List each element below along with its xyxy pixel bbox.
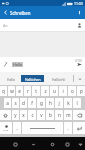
button[interactable]: Hallöchli: [44, 72, 73, 85]
staticText: 11:03: [74, 1, 83, 6]
button[interactable]: o: [68, 86, 76, 96]
button[interactable]: Add recipient: [74, 19, 85, 31]
button[interactable]: s: [12, 98, 19, 108]
button[interactable]: d: [20, 98, 27, 108]
button[interactable]: Hide keyboard: [75, 139, 85, 149]
staticText: d: [22, 100, 25, 106]
staticText: z: [44, 88, 47, 94]
staticText: a: [6, 100, 9, 106]
button[interactable]: x: [20, 110, 27, 120]
button[interactable]: l: [73, 98, 81, 108]
staticText: Hallöchen: [25, 77, 41, 81]
staticText: ,: [16, 125, 18, 131]
button[interactable]: Hallo: [0, 72, 21, 85]
staticText: u: [53, 88, 56, 94]
staticText: 0/160: [75, 59, 82, 63]
button[interactable]: Send: [73, 57, 85, 72]
staticText: x: [22, 112, 25, 118]
button[interactable]: y: [12, 110, 19, 120]
staticText: An: [3, 23, 8, 28]
button[interactable]: Space: [22, 122, 63, 134]
button[interactable]: u: [50, 86, 58, 96]
button[interactable]: .: [64, 122, 72, 134]
staticText: n: [58, 112, 61, 118]
staticText: c: [31, 112, 34, 118]
button[interactable]: h: [46, 98, 54, 108]
button[interactable]: v: [37, 110, 45, 120]
staticText: p: [80, 88, 83, 94]
button[interactable]: Attach: [0, 57, 10, 72]
button[interactable]: w: [8, 86, 15, 96]
staticText: y: [14, 112, 17, 118]
staticText: t: [35, 88, 37, 94]
button[interactable]: Home: [10, 139, 20, 149]
staticText: g: [40, 100, 43, 106]
staticText: i: [62, 88, 64, 94]
button[interactable]: t: [32, 86, 40, 96]
staticText: j: [58, 100, 60, 106]
button[interactable]: e: [16, 86, 23, 96]
button[interactable]: k: [64, 98, 72, 108]
button[interactable]: z: [41, 86, 49, 96]
button[interactable]: ,: [13, 122, 21, 134]
button[interactable]: Screenshot: [62, 139, 72, 149]
staticText: Hallo: [7, 77, 15, 81]
button[interactable]: r: [24, 86, 31, 96]
button[interactable]: n: [55, 110, 63, 120]
button[interactable]: i: [59, 86, 67, 96]
button[interactable]: Shift: [0, 110, 11, 120]
button[interactable]: More options: [74, 6, 85, 19]
button[interactable]: More suggestions: [74, 72, 85, 85]
button[interactable]: Back: [28, 139, 38, 149]
button[interactable]: f: [28, 98, 36, 108]
button[interactable]: Recents: [47, 139, 57, 149]
staticText: o: [71, 88, 74, 94]
button[interactable]: b: [46, 110, 54, 120]
staticText: m: [66, 112, 71, 118]
staticText: v: [40, 112, 43, 118]
staticText: r: [27, 88, 29, 94]
staticText: e: [18, 88, 21, 94]
staticText: l: [76, 100, 78, 106]
button[interactable]: p: [77, 86, 85, 96]
button[interactable]: g: [37, 98, 45, 108]
staticText: b: [49, 112, 52, 118]
button[interactable]: Hallo: [10, 57, 73, 72]
button[interactable]: Symbols: [0, 122, 12, 134]
staticText: .: [67, 125, 69, 131]
staticText: Schreiben: [10, 10, 31, 16]
staticText: s: [14, 100, 17, 106]
staticText: k: [67, 100, 70, 106]
staticText: h: [49, 100, 52, 106]
button[interactable]: q: [0, 86, 7, 96]
button[interactable]: j: [55, 98, 63, 108]
button[interactable]: Enter: [73, 122, 85, 134]
button[interactable]: m: [64, 110, 72, 120]
staticText: Hallöchli: [52, 77, 66, 81]
staticText: f: [31, 100, 33, 106]
button[interactable]: Back: [0, 6, 10, 19]
button[interactable]: a: [4, 98, 11, 108]
staticText: Hallo: [13, 62, 22, 67]
button[interactable]: c: [28, 110, 36, 120]
button[interactable]: Hallöchen: [21, 75, 44, 82]
staticText: q: [2, 88, 5, 94]
button[interactable]: Backspace: [73, 110, 85, 120]
staticText: w: [10, 88, 14, 94]
staticText: ?123: [3, 128, 9, 131]
